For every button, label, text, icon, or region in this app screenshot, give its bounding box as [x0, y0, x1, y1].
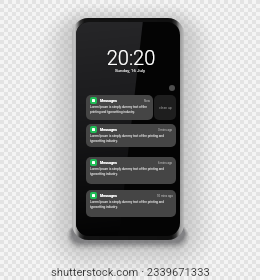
staticText: 10 mins ago — [157, 194, 173, 197]
staticText: Lorem Ipsum is simply dummy text of the … — [90, 105, 150, 113]
button[interactable]: Notification settings — [169, 85, 175, 91]
staticText: Messages — [100, 194, 117, 198]
staticText: shutterstock.com · 2339671333 — [51, 266, 210, 279]
staticText: Messages — [100, 161, 117, 165]
staticText: 20:20 — [79, 46, 180, 69]
staticText: Now — [144, 99, 150, 102]
button[interactable]: clean up — [154, 95, 176, 120]
staticText: Messages — [100, 128, 117, 132]
button[interactable]: Messages — [86, 190, 176, 217]
staticText: 3 mins ago — [158, 128, 173, 131]
staticText: Lorem Ipsum is simply dummy text of the … — [90, 134, 173, 142]
staticText: clean up — [159, 106, 172, 110]
staticText: 6 mins ago — [158, 161, 173, 164]
staticText: Lorem Ipsum is simply dummy text of the … — [90, 200, 173, 208]
staticText: Lorem Ipsum is simply dummy text of the … — [90, 167, 173, 175]
button[interactable]: Messages — [86, 95, 153, 120]
button[interactable]: Messages — [86, 157, 176, 184]
staticText: Sunday, 16 July — [78, 68, 180, 73]
staticText: Messages — [100, 99, 117, 103]
button[interactable]: Messages — [86, 124, 176, 147]
